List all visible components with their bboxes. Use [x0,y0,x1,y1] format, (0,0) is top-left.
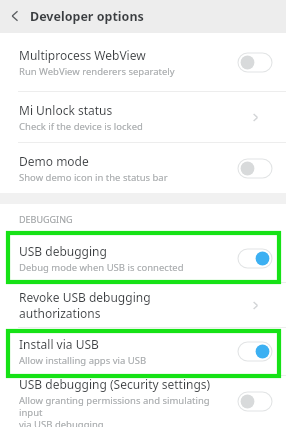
other: Open [246,108,264,126]
button[interactable]: Toggle off [238,159,272,178]
other: Open [246,296,264,314]
staticText: Demo mode [19,153,89,169]
button[interactable]: Multiprocess WebView [0,33,286,91]
button[interactable]: Toggle on [238,249,272,268]
staticText: USB debugging (Security settings) [19,376,211,392]
staticText: Allow granting permissions and simulatin… [19,394,232,427]
button[interactable]: Demo mode [0,143,286,193]
button[interactable]: Toggle off [238,392,272,411]
staticText: Run WebView renderers separately [19,65,175,78]
button[interactable]: Install via USB [0,328,286,375]
button[interactable]: Back [0,1,30,31]
staticText: USB debugging [19,243,107,259]
staticText: Show demo icon in the status bar [19,171,168,184]
button[interactable]: Mi Unlock status [0,92,286,142]
staticText: Developer options [30,8,144,25]
button[interactable]: Revoke USB debugging authorizations [0,283,286,327]
button[interactable]: USB debugging [0,234,286,282]
staticText: Install via USB [19,336,99,352]
staticText: Check if the device is locked [19,120,143,133]
staticText: Multiprocess WebView [19,47,146,63]
button[interactable]: USB debugging (Security settings) [0,376,286,427]
staticText: Mi Unlock status [19,102,113,118]
staticText: Revoke USB debugging authorizations [19,289,232,321]
staticText: Debug mode when USB is connected [19,261,184,274]
button[interactable]: Toggle on [238,342,272,361]
button[interactable]: Toggle off [238,53,272,72]
staticText: DEBUGGING [19,213,73,225]
staticText: Allow installing apps via USB [19,354,147,367]
